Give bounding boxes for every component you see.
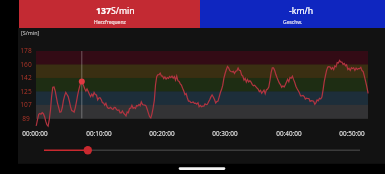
staticText: 00:30:00 — [205, 129, 245, 138]
staticText: 125 — [19, 87, 33, 96]
staticText: 00:00:00 — [15, 129, 55, 138]
button[interactable]: -km/h — [200, 0, 385, 28]
staticText: 178 — [19, 46, 33, 55]
staticText: 160 — [19, 60, 33, 69]
staticText: Geschw. — [283, 19, 303, 26]
staticText: Herzfrequenz — [94, 19, 126, 26]
staticText: 107 — [19, 100, 33, 109]
staticText: 00:40:00 — [269, 129, 309, 138]
staticText: 142 — [19, 73, 33, 82]
button[interactable]: 137S/min — [19, 0, 200, 28]
staticText: [S/min] — [21, 29, 40, 36]
staticText: 00:20:00 — [142, 129, 182, 138]
staticText: 00:10:00 — [79, 129, 119, 138]
staticText: 137S/min — [96, 5, 135, 17]
staticText: 89 — [19, 114, 33, 123]
staticText: 00:50:00 — [332, 129, 372, 138]
staticText: -km/h — [289, 5, 314, 17]
